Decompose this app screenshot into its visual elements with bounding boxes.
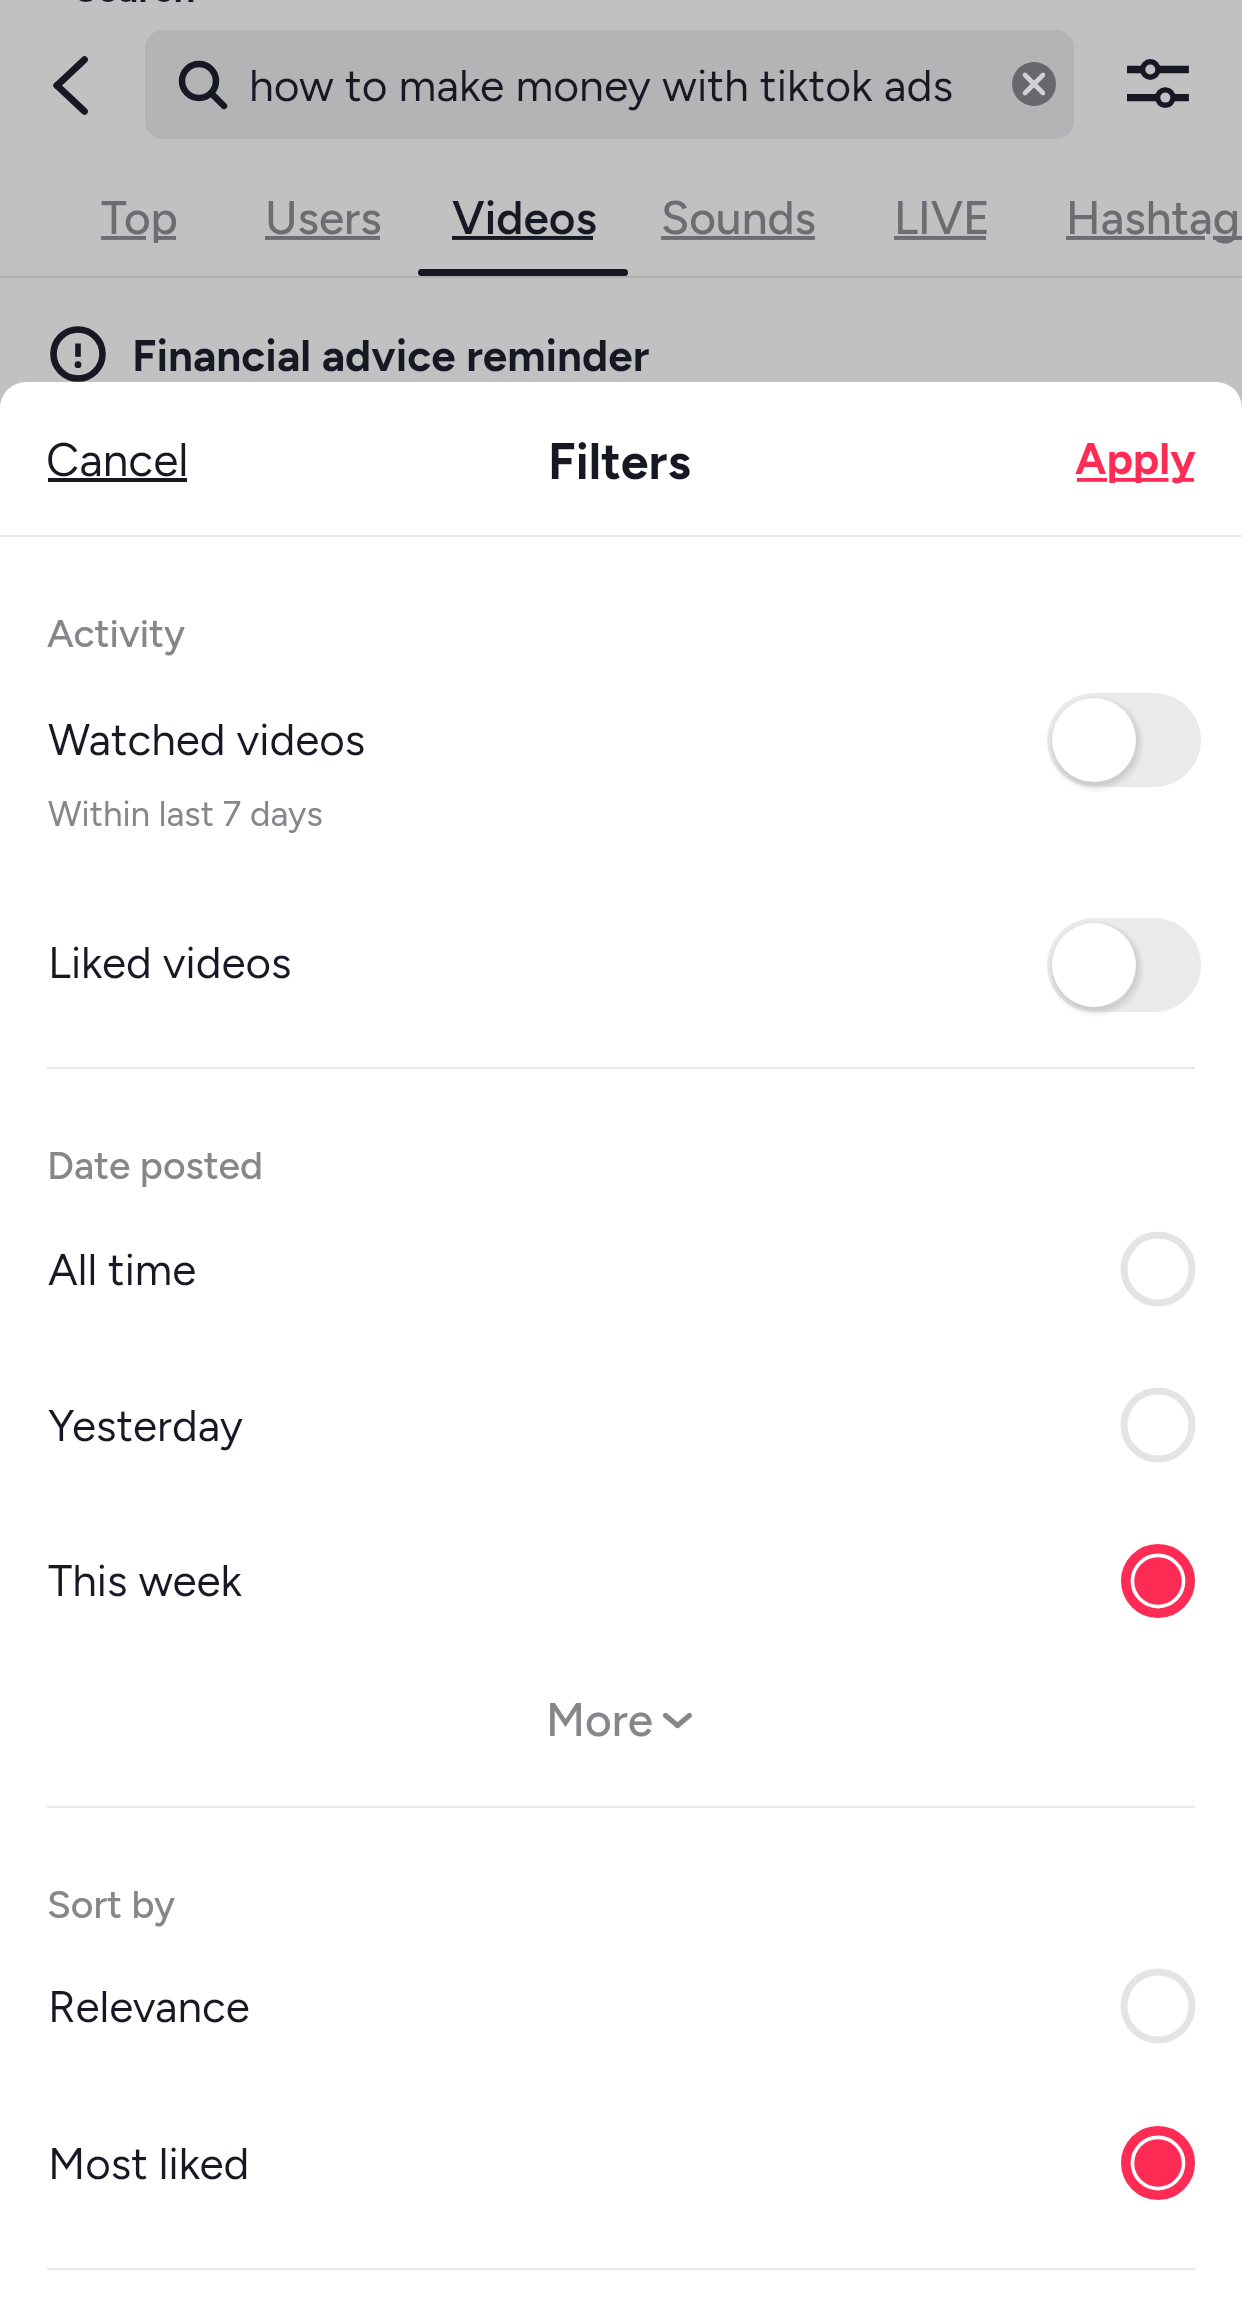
button[interactable]: More: [516, 1670, 722, 1769]
staticText: Liked videos: [48, 936, 292, 989]
staticText: Videos: [452, 190, 597, 245]
staticText: LIVE: [894, 190, 991, 245]
staticText: Most liked: [48, 2137, 250, 2190]
button[interactable]: Sounds: [635, 169, 842, 265]
staticText: Users: [265, 190, 382, 245]
button[interactable]: Toggle: [1047, 918, 1201, 1012]
staticText: Apply: [1075, 432, 1196, 485]
staticText: Sounds: [661, 190, 816, 245]
button[interactable]: Search filters: [1104, 36, 1196, 128]
button[interactable]: Liked videos: [0, 899, 1242, 1044]
staticText: Yesterday: [48, 1399, 243, 1452]
staticText: Watched videos: [48, 713, 366, 766]
button[interactable]: This week: [0, 1503, 1242, 1659]
button[interactable]: Hashtags: [1040, 169, 1242, 265]
staticText: All time: [48, 1243, 197, 1296]
button[interactable]: Users: [239, 169, 408, 265]
button[interactable]: Toggle: [1047, 693, 1201, 787]
staticText: Sort by: [47, 1881, 176, 1928]
button[interactable]: Most liked: [0, 2085, 1242, 2241]
button[interactable]: Watched videos: [0, 674, 1242, 874]
button[interactable]: LIVE: [868, 169, 1017, 265]
staticText: Top: [101, 190, 178, 245]
staticText: Cancel: [46, 432, 189, 487]
staticText: Within last 7 days: [48, 793, 323, 835]
staticText: how to make money with tiktok ads: [249, 59, 954, 112]
staticText: This week: [48, 1554, 242, 1607]
staticText: Financial advice reminder: [132, 329, 650, 382]
button[interactable]: All time: [0, 1191, 1242, 1347]
staticText: Search: [74, 0, 196, 12]
button[interactable]: Top: [75, 169, 204, 265]
staticText: Hashtags: [1066, 190, 1242, 245]
staticText: Filters: [548, 431, 691, 491]
button[interactable]: Clear search: [1011, 61, 1057, 107]
button[interactable]: Cancel: [16, 416, 219, 503]
button[interactable]: Apply: [1045, 416, 1226, 501]
button[interactable]: Relevance: [0, 1928, 1242, 2084]
staticText: Date posted: [47, 1142, 263, 1189]
staticText: Activity: [47, 610, 186, 657]
staticText: Relevance: [48, 1980, 250, 2033]
button[interactable]: Yesterday: [0, 1347, 1242, 1503]
button[interactable]: how to make money with tiktok ads: [145, 30, 1074, 139]
button[interactable]: Videos: [426, 169, 623, 265]
button[interactable]: Back: [26, 38, 118, 130]
staticText: More: [546, 1692, 653, 1747]
